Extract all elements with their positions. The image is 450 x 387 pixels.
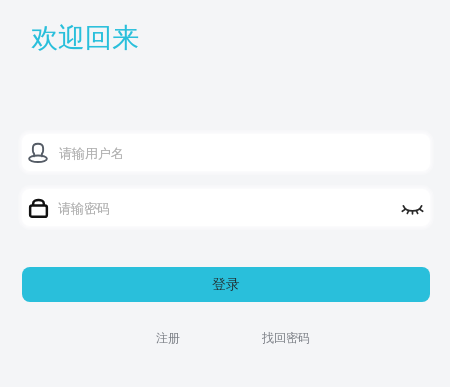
staticText: 注册 [156,330,180,345]
staticText: 欢迎回来 [31,21,139,55]
button[interactable]: User name [22,134,430,171]
staticText: 请输密码 [58,200,110,216]
staticText: 找回密码 [262,330,310,345]
other: User name [28,143,48,163]
staticText: 请输用户名 [59,145,124,161]
button[interactable]: Password [22,189,430,226]
button[interactable]: 找回密码 [254,324,318,351]
button[interactable]: Show password [397,193,427,223]
staticText: 登录 [212,276,240,294]
button[interactable]: 登录 [22,267,430,302]
other: Password [29,198,48,218]
button[interactable]: 注册 [148,324,188,351]
